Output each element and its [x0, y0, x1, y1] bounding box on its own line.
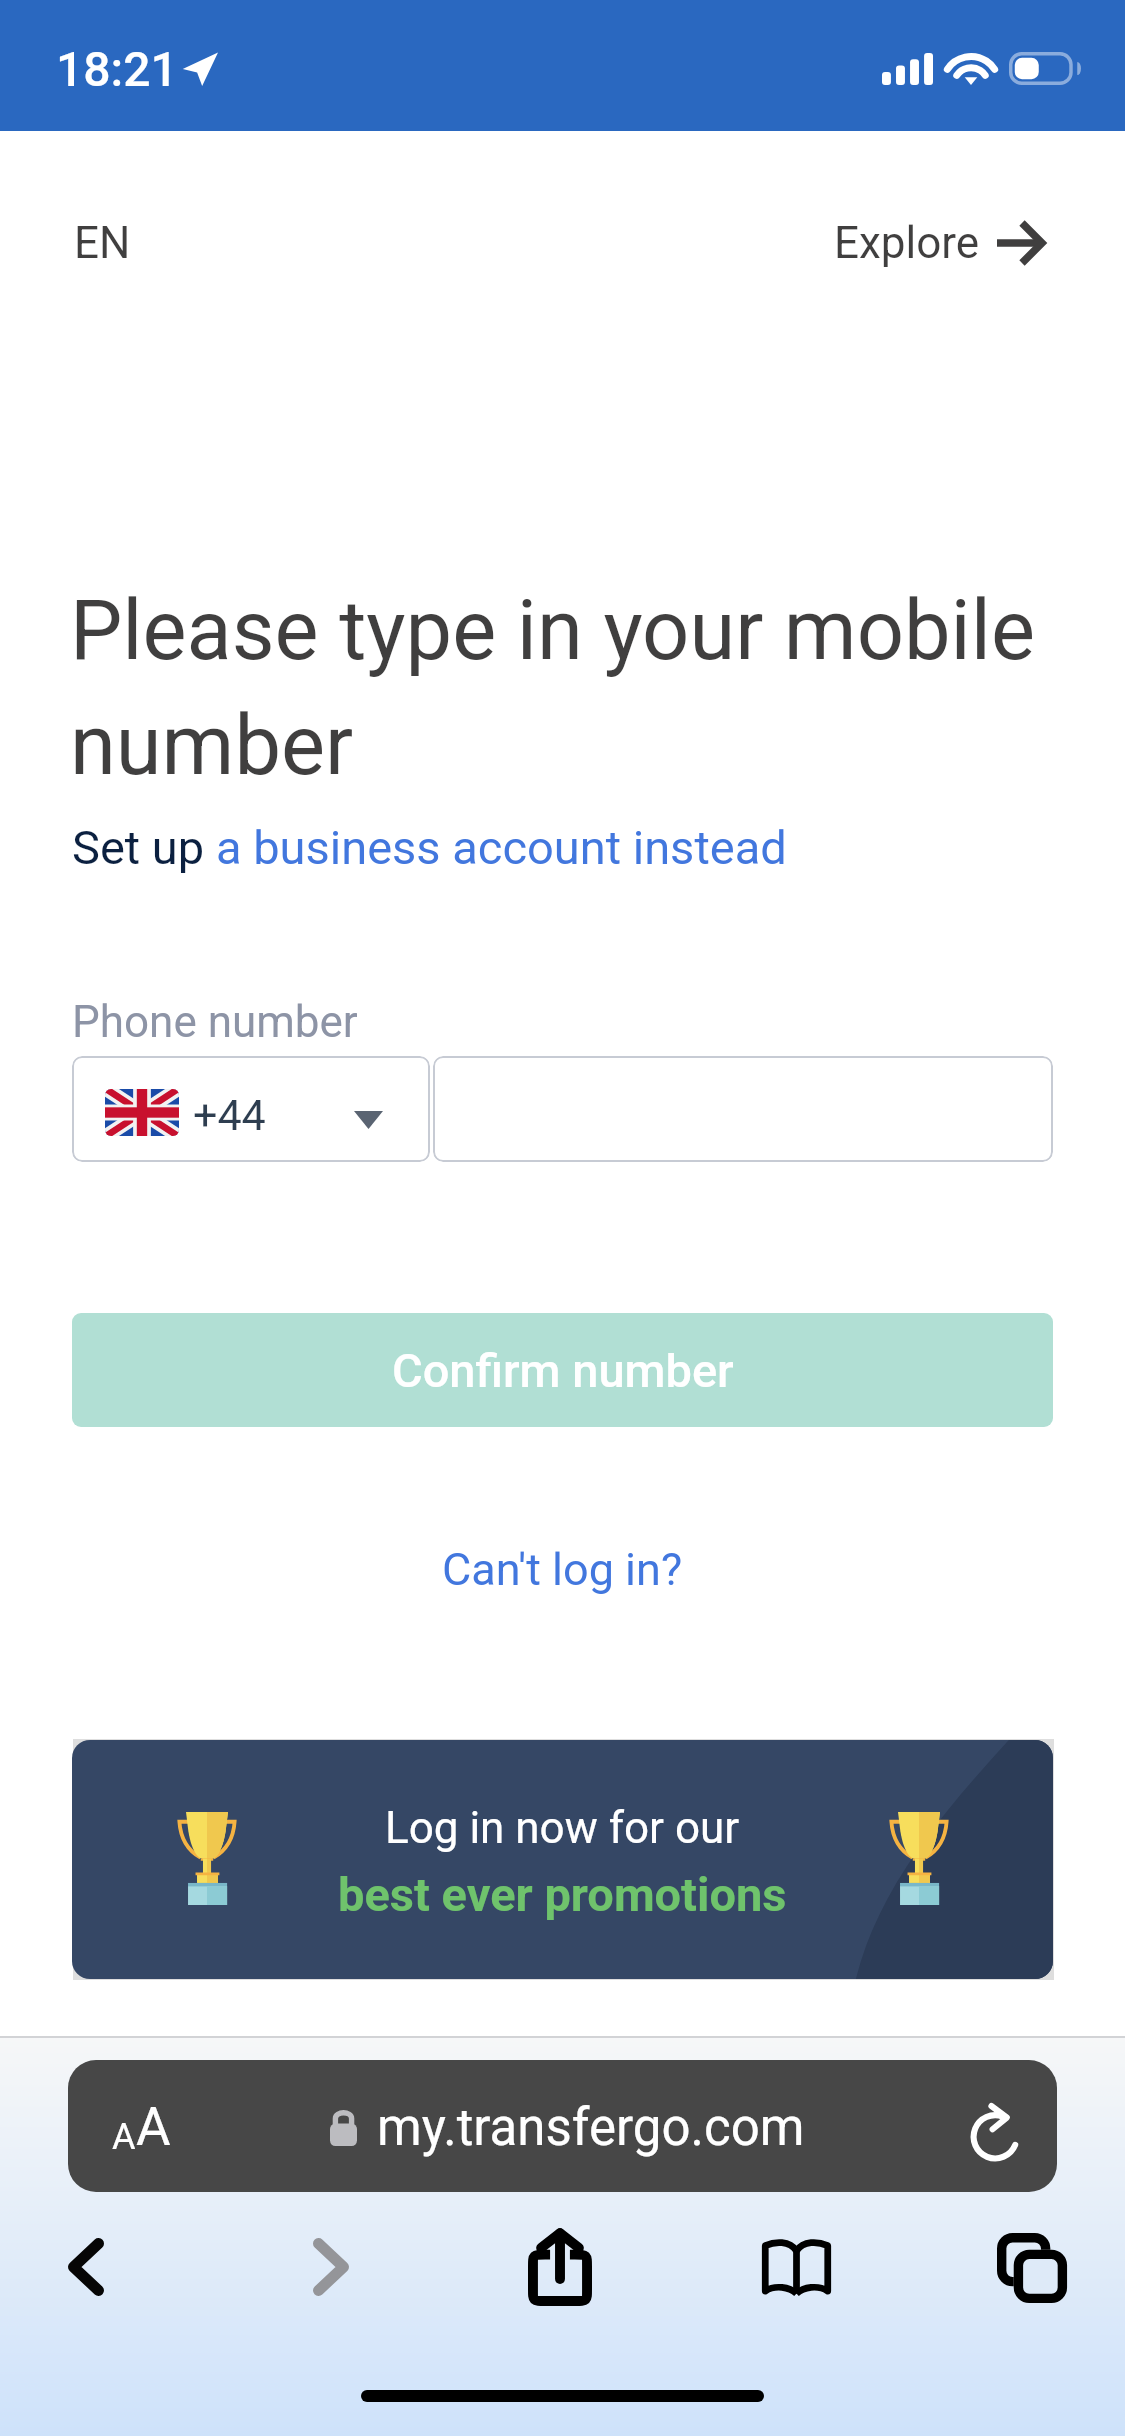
staticText: A: [112, 2116, 136, 2158]
button[interactable]: Share: [490, 2207, 630, 2327]
button[interactable]: Confirm number: [72, 1313, 1053, 1427]
staticText: 18:21: [56, 41, 178, 97]
staticText: Explore: [834, 217, 980, 269]
staticText: A: [136, 2096, 171, 2158]
staticText: Log in now for our: [385, 1802, 740, 1854]
button[interactable]: Text size: [68, 2060, 1057, 2192]
staticText: my.transfergo.com: [377, 2098, 805, 2158]
staticText: Please type in your mobile number: [70, 582, 1080, 794]
button[interactable]: Back: [16, 2207, 156, 2327]
staticText: best ever promotions: [338, 1867, 787, 1922]
button[interactable]: Bookmarks: [726, 2207, 866, 2327]
button[interactable]: Log in now for our: [72, 1740, 1053, 1979]
button[interactable]: Tabs: [962, 2207, 1102, 2327]
staticText: Set up: [72, 820, 216, 875]
button[interactable]: +44: [72, 1056, 430, 1162]
button[interactable]: Text size: [100, 2082, 183, 2172]
button[interactable]: Can't log in?: [442, 1543, 683, 1596]
button[interactable]: Explore: [812, 201, 1065, 285]
button[interactable]: EN: [52, 201, 153, 285]
button[interactable]: a business account instead: [216, 820, 787, 875]
staticText: +44: [193, 1090, 266, 1140]
button[interactable]: Forward: [261, 2207, 401, 2327]
button[interactable]: Reload: [961, 2091, 1041, 2171]
staticText: Phone number: [72, 996, 358, 1048]
staticText: Confirm number: [392, 1343, 734, 1398]
staticText: EN: [74, 217, 131, 269]
button[interactable]: [433, 1056, 1053, 1162]
